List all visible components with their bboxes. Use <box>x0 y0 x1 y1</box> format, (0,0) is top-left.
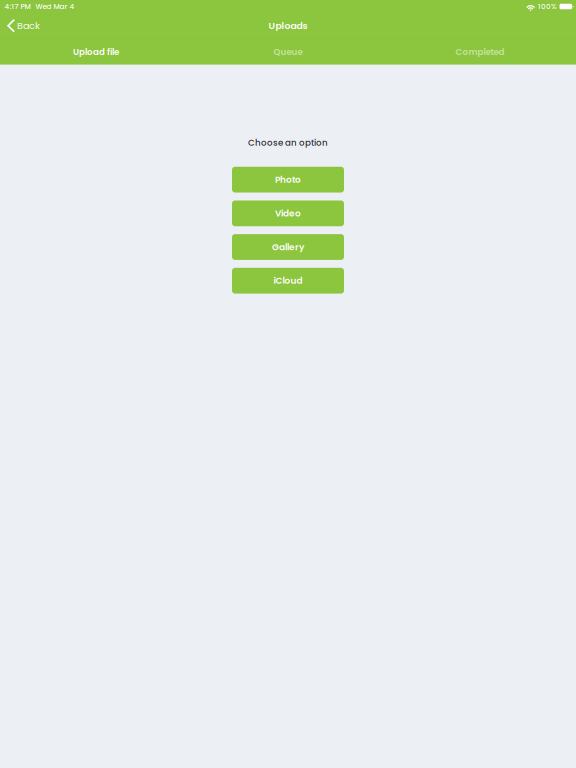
button[interactable]: Completed <box>384 39 576 65</box>
staticText: Photo <box>275 173 301 186</box>
button[interactable]: Photo <box>232 167 344 192</box>
button[interactable]: Queue <box>192 39 384 65</box>
staticText: Uploads <box>268 19 307 32</box>
button[interactable]: Gallery <box>232 234 344 260</box>
staticText: Gallery <box>272 241 304 253</box>
button[interactable]: Upload file <box>0 39 192 65</box>
staticText: Back <box>17 19 40 32</box>
button[interactable]: Back <box>0 13 50 38</box>
staticText: Video <box>275 207 301 220</box>
staticText: 100% <box>538 1 557 12</box>
button[interactable]: Video <box>232 200 344 226</box>
staticText: 4:17 PM <box>4 1 30 12</box>
staticText: iCloud <box>273 274 302 287</box>
staticText: Completed <box>455 46 504 58</box>
staticText: Wed Mar 4 <box>35 1 74 12</box>
staticText: Choose an option <box>248 137 328 149</box>
button[interactable]: iCloud <box>232 268 344 294</box>
staticText: Upload file <box>73 46 119 58</box>
staticText: Queue <box>273 46 302 58</box>
